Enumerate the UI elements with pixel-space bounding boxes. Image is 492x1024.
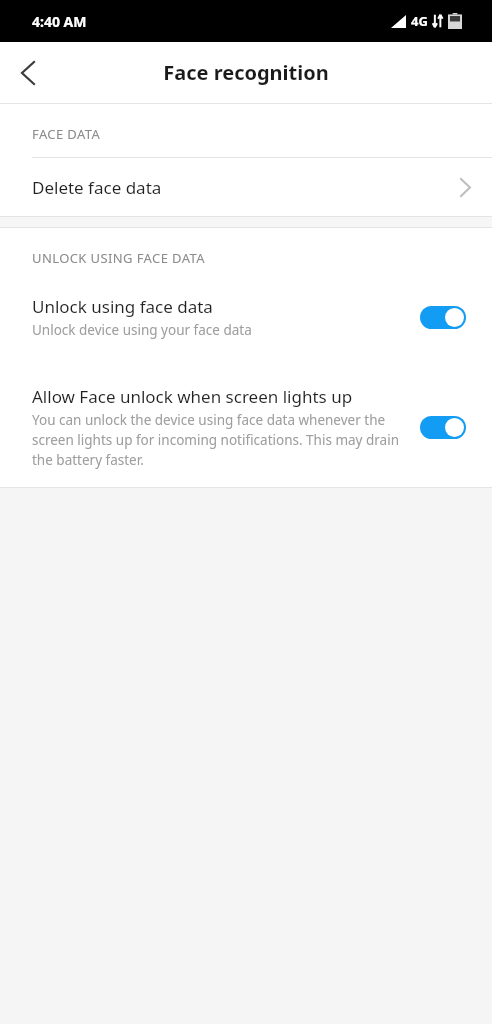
staticText: UNLOCK USING FACE DATA <box>32 249 205 267</box>
staticText: 4:40 AM <box>32 12 87 31</box>
staticText: You can unlock the device using face dat… <box>32 411 408 469</box>
other: On <box>420 416 466 439</box>
staticText: 4G <box>411 12 428 30</box>
staticText: Unlock device using your face data <box>32 321 252 339</box>
staticText: Delete face data <box>32 176 461 199</box>
button[interactable]: Unlock using face data <box>0 295 492 339</box>
staticText: Allow Face unlock when screen lights up <box>32 385 353 408</box>
button[interactable]: Allow Face unlock when screen lights up <box>0 385 492 469</box>
staticText: FACE DATA <box>32 125 101 143</box>
other: On <box>420 306 466 329</box>
button[interactable]: Delete face data <box>0 158 492 216</box>
staticText: Unlock using face data <box>32 295 213 318</box>
button[interactable]: Back <box>0 45 56 101</box>
staticText: Face recognition <box>163 59 329 86</box>
